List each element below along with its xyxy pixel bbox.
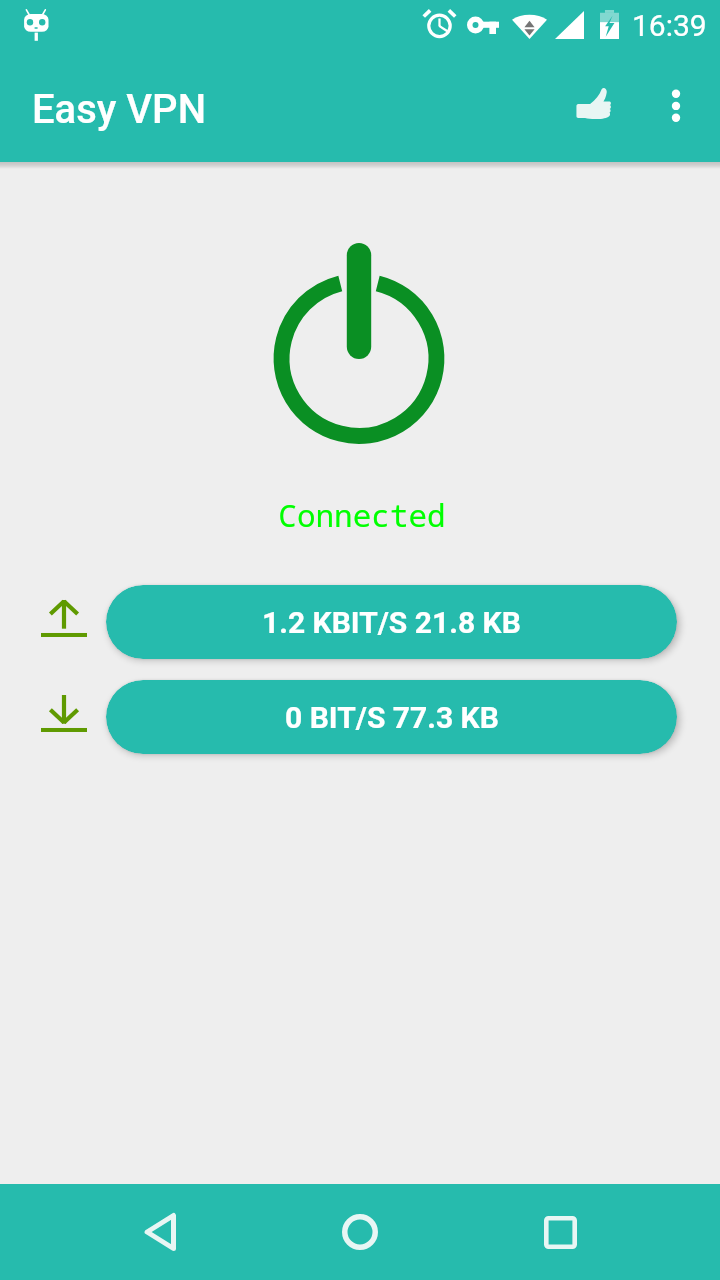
staticText: Connected — [2, 494, 720, 536]
button[interactable]: 1.2 KBIT/S 21.8 KB — [106, 585, 677, 659]
button[interactable]: Back — [80, 1184, 240, 1280]
staticText: 0 BIT/S 77.3 KB — [285, 700, 499, 735]
button[interactable]: Toggle VPN connection — [249, 233, 469, 453]
button[interactable]: Recent apps — [480, 1184, 640, 1280]
button[interactable]: Home — [280, 1184, 440, 1280]
button[interactable]: Rate this app — [536, 50, 648, 162]
staticText: Easy VPN — [32, 86, 207, 133]
staticText: 16:39 — [632, 8, 707, 43]
button[interactable]: 0 BIT/S 77.3 KB — [106, 680, 677, 754]
staticText: 1.2 KBIT/S 21.8 KB — [262, 605, 521, 640]
button[interactable]: More options — [620, 50, 720, 162]
